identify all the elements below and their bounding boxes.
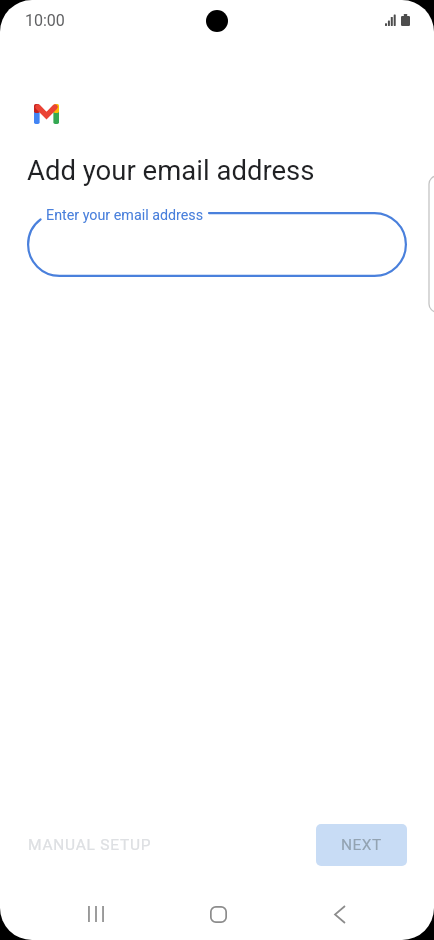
button[interactable]: NEXT [316,824,407,866]
button[interactable]: Recent apps [60,894,132,934]
staticText: MANUAL SETUP [28,836,152,854]
staticText: Enter your email address [46,207,204,224]
button[interactable]: Home [182,894,254,934]
button[interactable]: MANUAL SETUP [16,827,164,863]
button[interactable]: Enter your email address [27,212,407,277]
staticText: 10:00 [25,11,65,30]
staticText: Add your email address [27,154,315,186]
staticText: NEXT [341,836,382,854]
button[interactable]: Back [304,894,376,934]
